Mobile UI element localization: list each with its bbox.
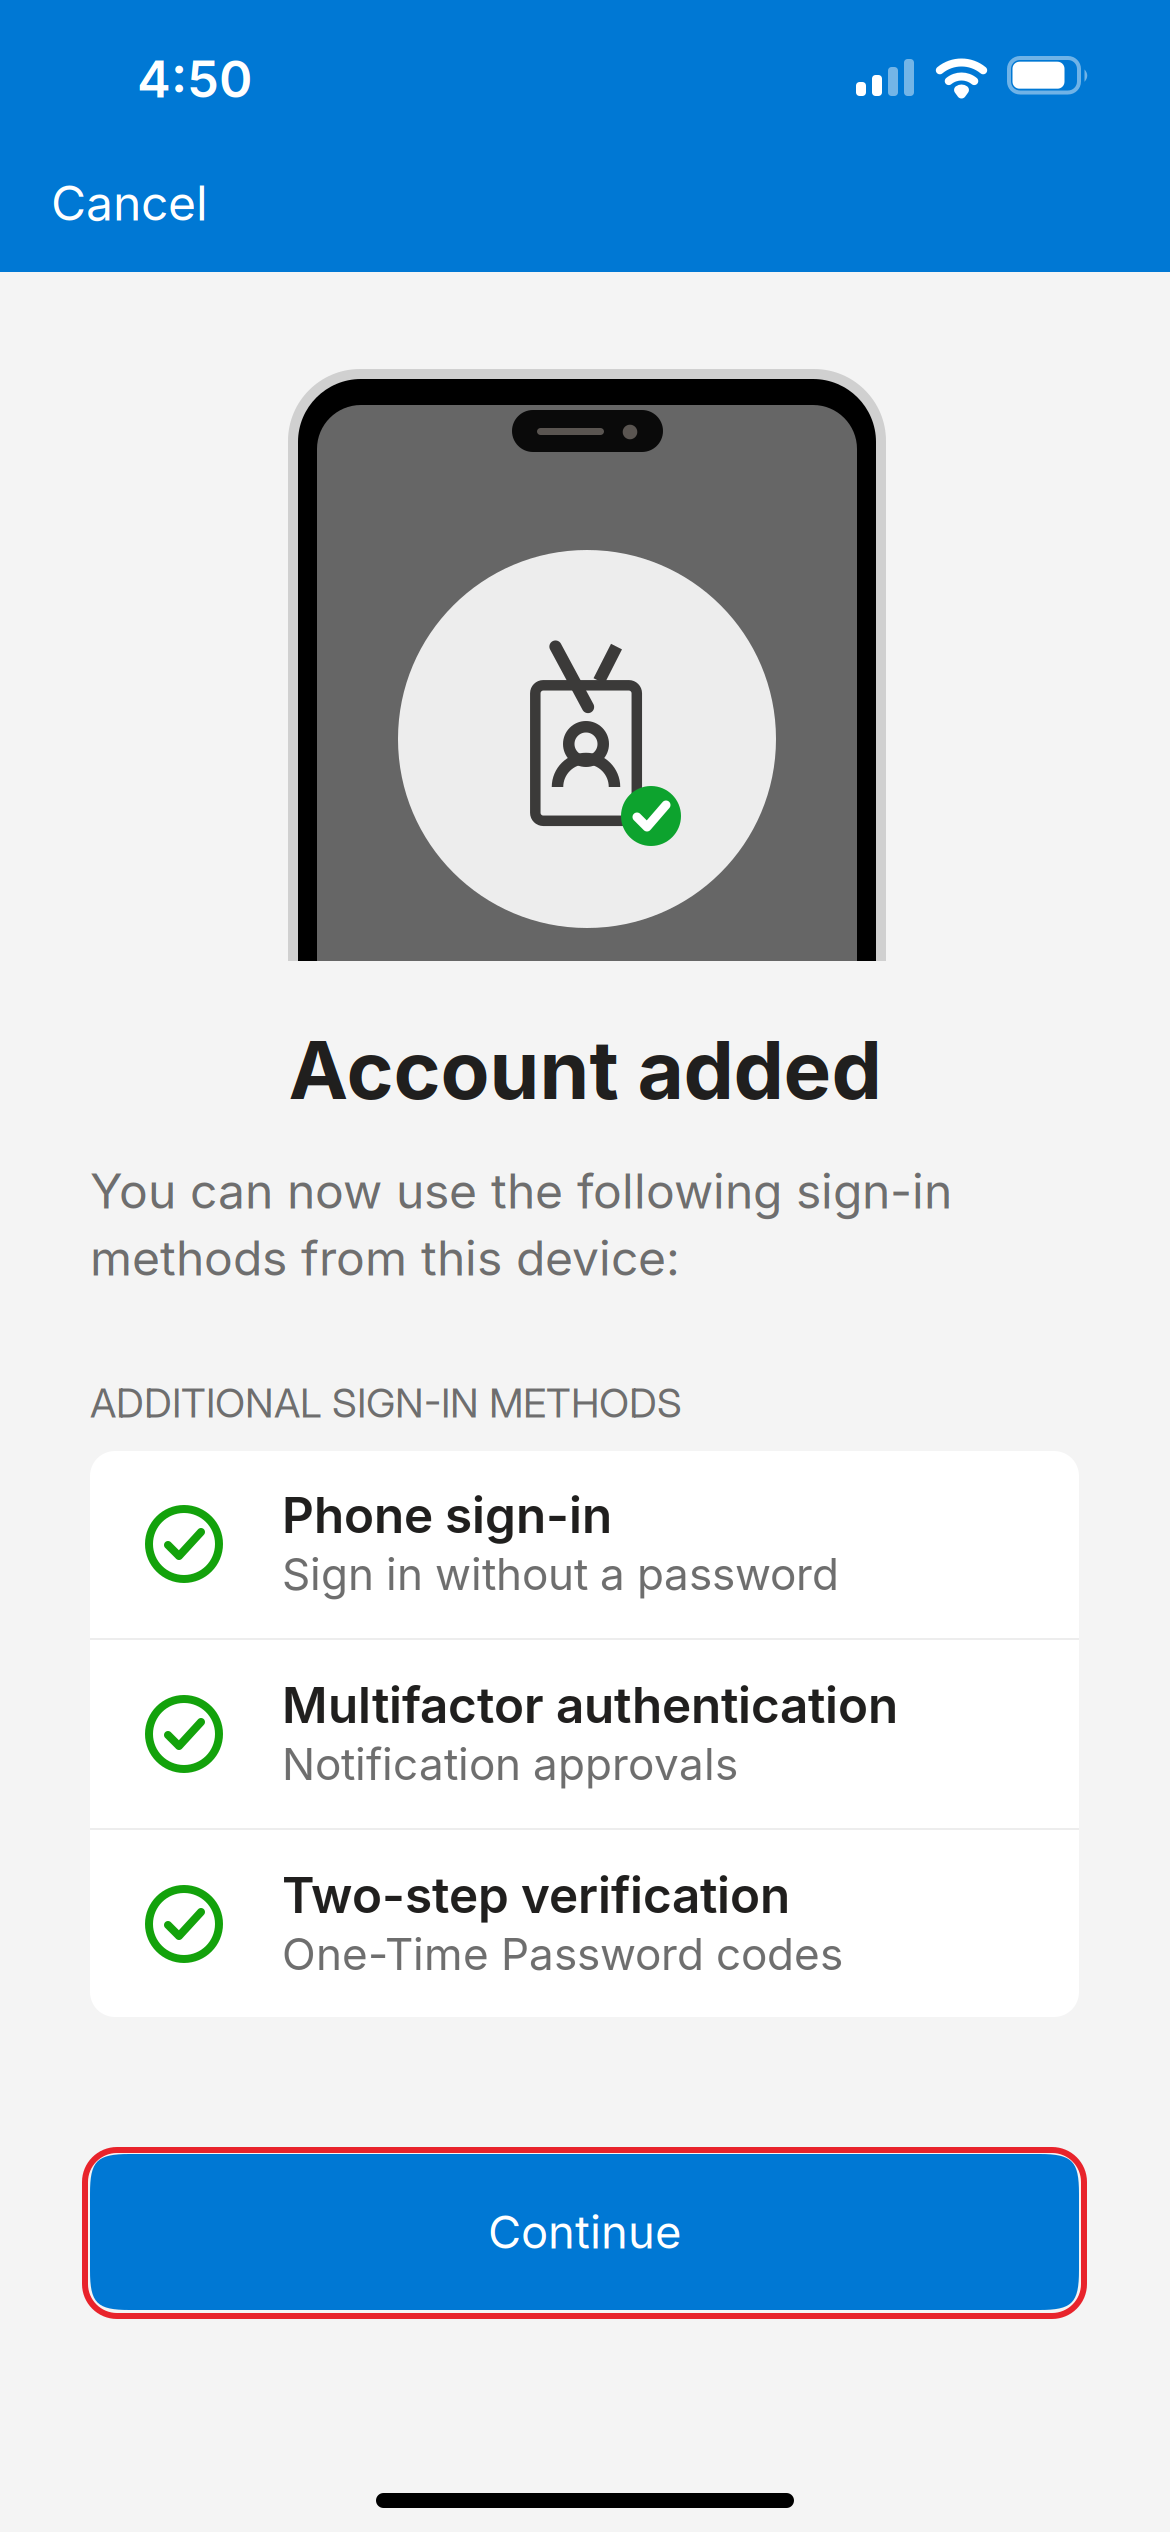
button[interactable]: Multifactor authentication <box>90 1640 1079 1828</box>
staticText: methods from this device: <box>90 1229 680 1287</box>
staticText: Notification approvals <box>282 1737 738 1791</box>
button[interactable]: Two-step verification <box>90 1830 1079 2018</box>
button[interactable]: Cancel <box>0 150 260 260</box>
button[interactable]: Continue <box>90 2154 1079 2310</box>
staticText: Multifactor authentication <box>282 1675 898 1735</box>
staticText: ADDITIONAL SIGN-IN METHODS <box>90 1379 682 1427</box>
staticText: Two-step verification <box>282 1865 790 1925</box>
staticText: Sign in without a password <box>282 1547 839 1601</box>
staticText: You can now use the following sign-in <box>90 1162 952 1220</box>
staticText: Phone sign-in <box>282 1485 612 1545</box>
staticText: Account added <box>288 1022 881 1118</box>
staticText: Continue <box>488 2205 681 2259</box>
staticText: Cancel <box>51 174 208 232</box>
staticText: 4:50 <box>137 48 252 110</box>
staticText: One-Time Password codes <box>282 1927 843 1981</box>
button[interactable]: Phone sign-in <box>90 1450 1079 1638</box>
